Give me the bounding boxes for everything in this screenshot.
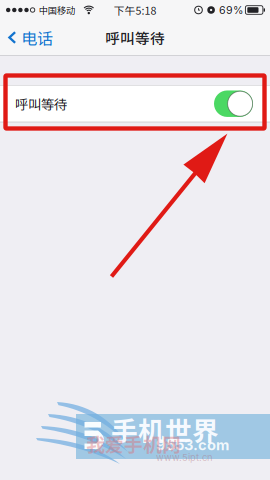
staticText: 手机世界 — [111, 410, 219, 449]
staticText: 下午5:18 — [113, 2, 156, 18]
staticText: 呼叫等待 — [105, 27, 165, 48]
staticText: 电话 — [21, 26, 53, 49]
staticText: 9553.com — [156, 436, 229, 454]
staticText: 我爱手机网 — [86, 430, 181, 457]
staticText: 中国移动 — [39, 3, 75, 17]
staticText: www.5ipt.cn — [156, 452, 213, 463]
button[interactable]: Call Waiting, on — [214, 90, 253, 117]
button[interactable]: 电话 — [0, 20, 61, 55]
staticText: 69% — [219, 3, 243, 16]
staticText: 呼叫等待 — [15, 94, 67, 113]
